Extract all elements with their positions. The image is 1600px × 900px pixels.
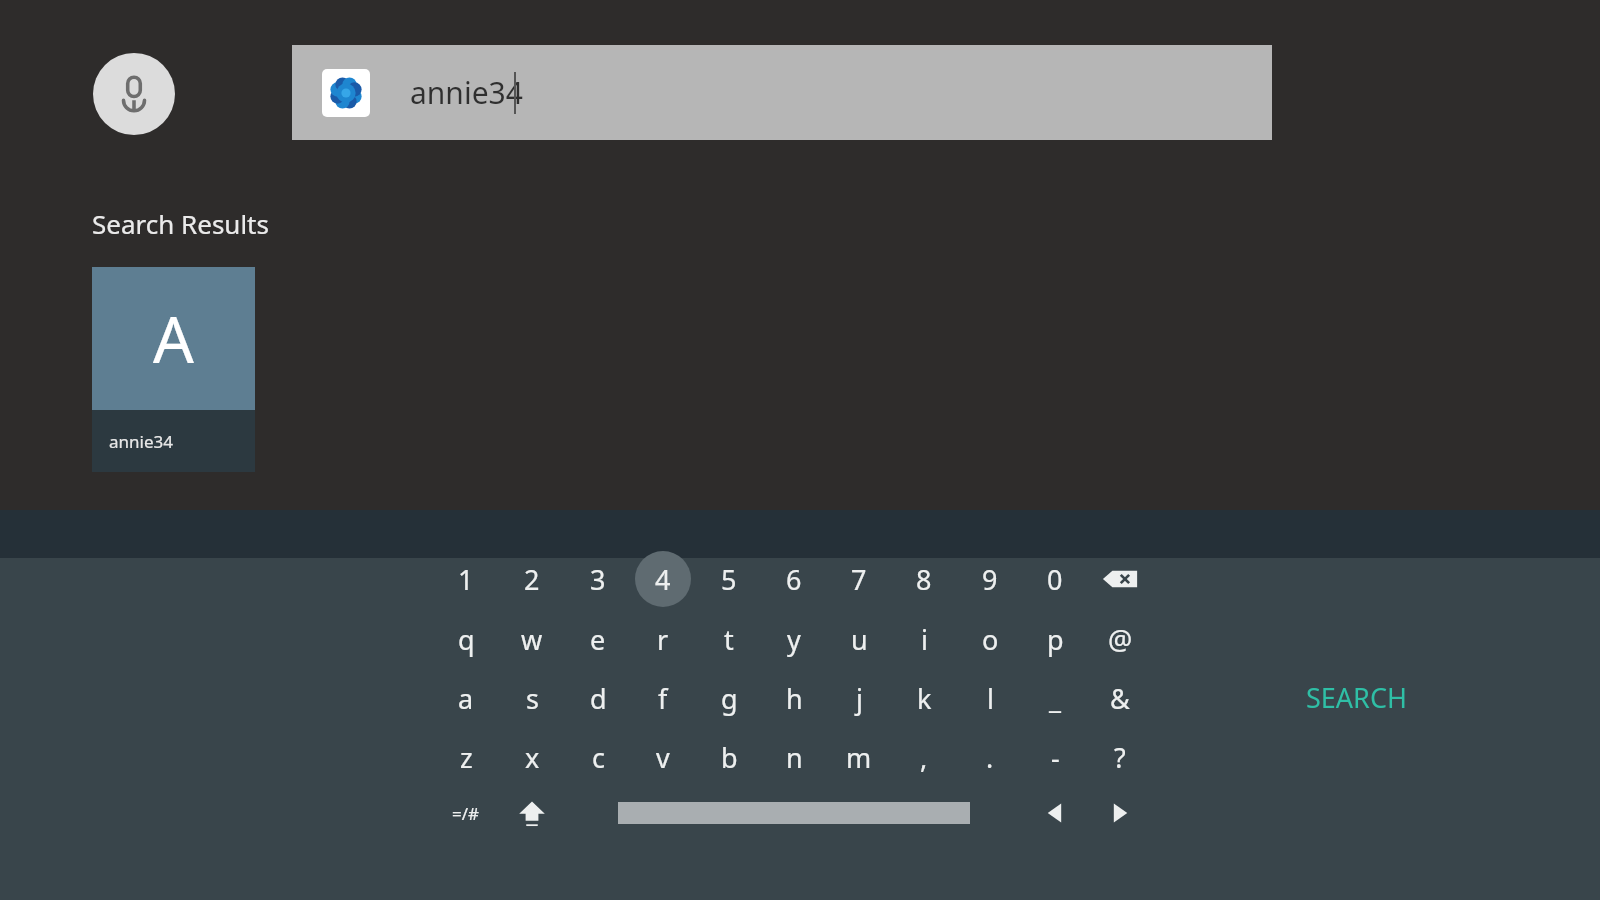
staticText: 9 [982,561,998,598]
button[interactable]: y [766,611,822,667]
staticText: 0 [1047,561,1063,598]
button[interactable]: f [635,670,691,726]
staticText: 4 [655,561,671,598]
staticText: 8 [916,561,932,598]
button[interactable]: =/# [438,785,494,841]
button[interactable]: SEARCH [1254,671,1459,723]
staticText: _ [1049,680,1061,717]
staticText: Search Results [92,206,269,241]
button[interactable]: 2 [504,551,560,607]
button[interactable]: _ [1027,670,1083,726]
button[interactable]: t [701,611,757,667]
button[interactable]: A [92,267,255,472]
staticText: e [590,621,606,658]
staticText: , [920,739,928,776]
button[interactable]: Voice search [93,53,175,135]
staticText: d [590,680,607,717]
staticText: x [525,739,540,776]
button[interactable]: b [701,729,757,785]
button[interactable]: w [504,611,560,667]
button[interactable]: p [1027,611,1083,667]
button[interactable]: o [962,611,1018,667]
staticText: m [846,739,872,776]
staticText: u [851,621,868,658]
button[interactable]: s [504,670,560,726]
button[interactable]: 1 [438,551,494,607]
button[interactable]: - [1027,729,1083,785]
button[interactable]: l [962,670,1018,726]
staticText: c [592,739,605,776]
button[interactable]: d [570,670,626,726]
staticText: @ [1108,621,1133,658]
staticText: =/# [452,802,480,825]
staticText: - [1051,739,1060,776]
staticText: 2 [524,561,540,598]
button[interactable]: & [1092,670,1148,726]
staticText: q [458,621,475,658]
button[interactable]: u [831,611,887,667]
staticText: . [986,739,994,776]
staticText: 7 [851,561,867,598]
button[interactable]: m [831,729,887,785]
staticText: A [153,295,194,382]
button[interactable]: x [504,729,560,785]
staticText: p [1047,621,1064,658]
button[interactable]: a [438,670,494,726]
button[interactable]: z [438,729,494,785]
staticText: & [1110,680,1130,717]
button[interactable]: 6 [766,551,822,607]
staticText: annie34 [109,430,173,453]
staticText: y [787,621,801,658]
button[interactable]: 8 [896,551,952,607]
button[interactable]: @ [1092,611,1148,667]
button[interactable]: n [766,729,822,785]
button[interactable]: 9 [962,551,1018,607]
staticText: v [656,739,670,776]
button[interactable]: q [438,611,494,667]
staticText: n [786,739,803,776]
button[interactable]: Backspace [1092,551,1148,607]
button[interactable]: j [831,670,887,726]
staticText: ? [1114,739,1126,776]
button[interactable]: i [896,611,952,667]
button[interactable]: k [896,670,952,726]
staticText: k [917,680,932,717]
staticText: w [521,621,543,658]
button[interactable]: e [570,611,626,667]
button[interactable]: Shift [504,785,560,841]
staticText: t [724,621,734,658]
staticText: b [721,739,738,776]
staticText: 5 [721,561,737,598]
staticText: f [658,680,668,717]
button[interactable]: 5 [701,551,757,607]
staticText: annie34 [410,72,523,113]
button[interactable]: h [766,670,822,726]
staticText: 1 [458,561,474,598]
staticText: l [987,680,994,717]
button[interactable]: v [635,729,691,785]
staticText: g [721,680,738,717]
button[interactable]: , [896,729,952,785]
button[interactable]: 0 [1027,551,1083,607]
staticText: o [982,621,999,658]
button[interactable]: Cursor right [1092,785,1148,841]
staticText: 3 [590,561,606,598]
staticText: r [657,621,669,658]
button[interactable]: ? [1092,729,1148,785]
staticText: 6 [786,561,802,598]
button[interactable]: 4 [635,551,691,607]
button[interactable]: g [701,670,757,726]
button[interactable]: 3 [570,551,626,607]
button[interactable]: 7 [831,551,887,607]
staticText: j [856,680,863,717]
staticText: a [458,680,474,717]
button[interactable]: annie34 [292,45,1272,140]
staticText: s [526,680,539,717]
button[interactable]: r [635,611,691,667]
staticText: h [786,680,803,717]
button[interactable]: . [962,729,1018,785]
button[interactable]: c [570,729,626,785]
staticText: SEARCH [1306,679,1407,716]
button[interactable]: Cursor left [1027,785,1083,841]
